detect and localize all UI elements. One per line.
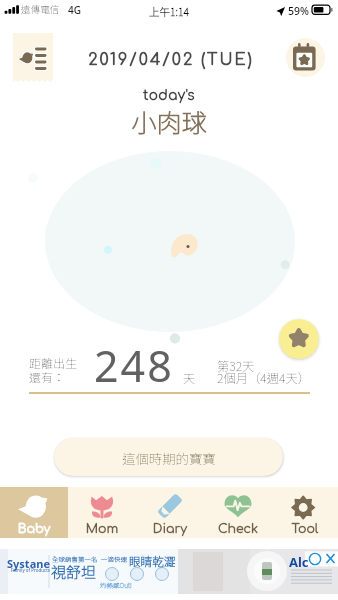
staticText: 視舒坦 (51, 561, 97, 583)
button[interactable]: Baby (0, 487, 68, 538)
staticText: 59% (288, 4, 309, 18)
button[interactable]: Check (204, 487, 272, 538)
button[interactable]: Favourite (279, 319, 319, 359)
staticText: today's (0, 88, 338, 104)
staticText: Mom (68, 522, 136, 536)
staticText: 小肉球 (0, 103, 338, 135)
staticText: 上午1:14 (0, 4, 338, 19)
staticText: Alc (289, 553, 309, 571)
staticText: 一滴快速 (101, 554, 127, 563)
staticText: 還有： (29, 368, 66, 385)
button[interactable]: Calendar (286, 38, 325, 77)
button[interactable]: Tool (272, 487, 338, 538)
staticText: 248 (94, 336, 174, 395)
staticText: 2個月（4週4天） (217, 369, 311, 387)
staticText: Check (204, 522, 272, 536)
button[interactable]: Records (13, 33, 53, 82)
staticText: 距離出生 (29, 354, 78, 371)
staticText: 2019/04/02 (TUE) (2, 51, 338, 73)
button[interactable]: Advertisement (0, 549, 338, 594)
staticText: Baby (0, 522, 68, 536)
staticText: Systane (7, 556, 50, 571)
staticText: 4G (68, 3, 81, 17)
staticText: 這個時期的寶寶 (122, 448, 216, 467)
button[interactable]: Diary (136, 487, 204, 538)
staticText: 眼睛乾澀 (129, 553, 176, 570)
button[interactable]: 這個時期的寶寶 (54, 438, 283, 476)
staticText: 天 (183, 369, 196, 386)
button[interactable]: Mom (68, 487, 136, 538)
staticText: Diary (136, 522, 204, 536)
staticText: 第32天 (217, 357, 255, 375)
staticText: Family of Products (11, 567, 50, 573)
staticText: Tool (272, 522, 338, 536)
staticText: 全球銷售第一名 (52, 554, 98, 563)
staticText: 灼熱感Out! (100, 580, 132, 589)
staticText: 遠傳電信 (21, 2, 60, 16)
